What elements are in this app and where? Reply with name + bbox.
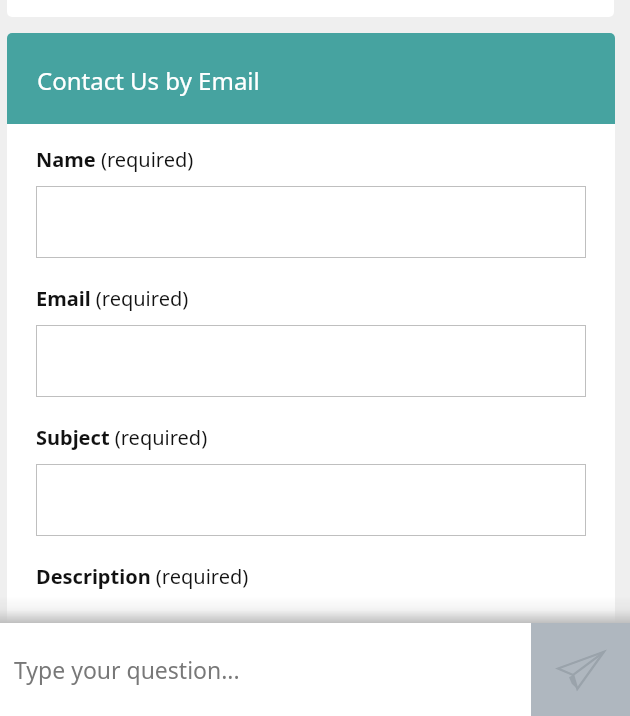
button[interactable] <box>36 464 586 536</box>
button[interactable]: Type your question... <box>0 623 531 716</box>
button[interactable] <box>36 186 586 258</box>
staticText: Type your question... <box>14 654 240 685</box>
staticText: Email (required) <box>36 285 189 312</box>
staticText: Name (required) <box>36 146 194 173</box>
staticText: Subject (required) <box>36 424 208 451</box>
button[interactable] <box>36 325 586 397</box>
staticText: Description (required) <box>36 563 249 590</box>
button[interactable]: Contact Us by Email <box>7 33 615 124</box>
staticText: Contact Us by Email <box>37 64 260 97</box>
button[interactable]: Send <box>531 623 630 716</box>
